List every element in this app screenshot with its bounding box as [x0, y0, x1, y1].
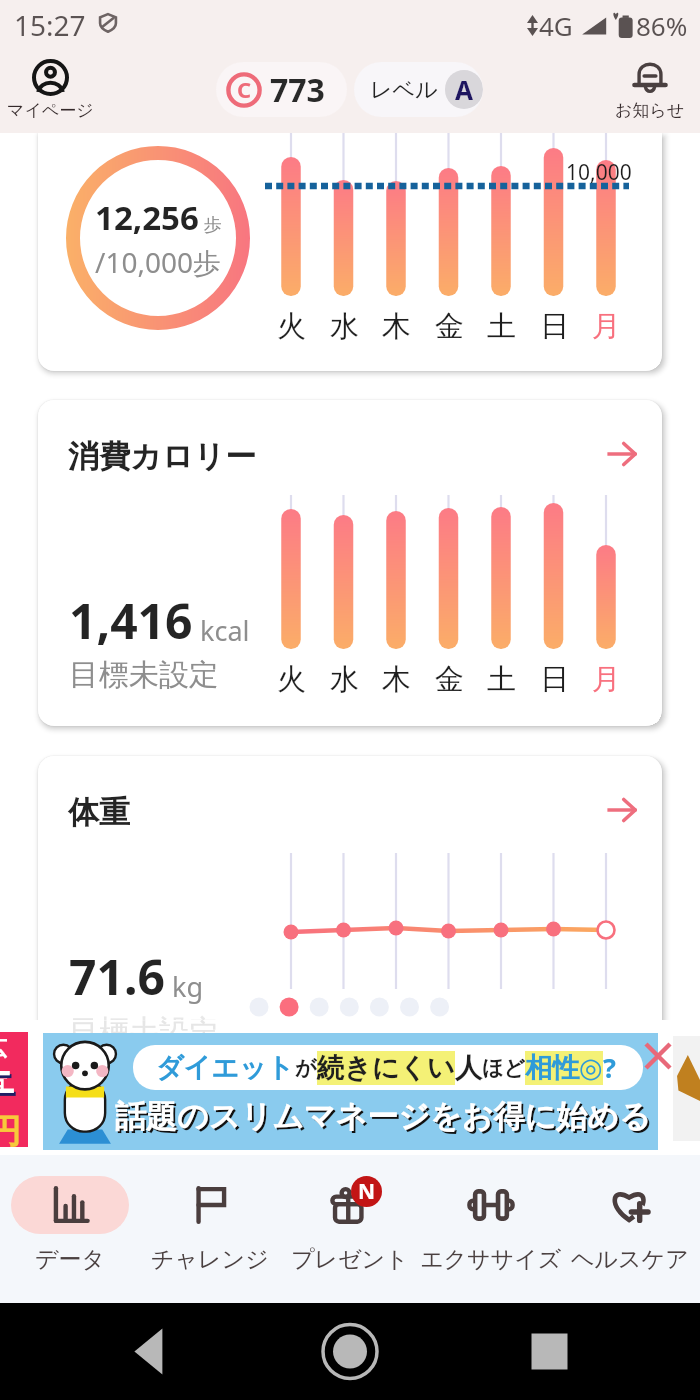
- staticText: ほど: [482, 1055, 525, 1081]
- staticText: 15:27: [14, 6, 86, 44]
- button[interactable]: エクササイズ: [411, 1163, 571, 1273]
- staticText: ニ: [0, 1060, 10, 1103]
- staticText: 773: [270, 68, 325, 112]
- staticText: ニ: [0, 1063, 12, 1106]
- staticText: 71.6: [69, 944, 165, 1009]
- staticText: kcal: [193, 612, 250, 649]
- staticText: 12,256: [95, 195, 199, 240]
- other: 詳細を見る: [604, 437, 638, 471]
- staticText: 1,416: [69, 588, 193, 653]
- staticText: 木: [382, 661, 411, 698]
- staticText: 金: [435, 308, 464, 345]
- staticText: 消費カロリー: [68, 437, 257, 476]
- button[interactable]: データ: [0, 1163, 150, 1273]
- staticText: 相性◎: [525, 1051, 603, 1085]
- staticText: お知らせ: [615, 100, 685, 121]
- staticText: 続きにくい: [317, 1051, 455, 1085]
- button[interactable]: N: [270, 1163, 430, 1273]
- staticText: 歩: [199, 212, 222, 237]
- staticText: ダイエット: [156, 1051, 295, 1085]
- staticText: データ: [35, 1245, 106, 1274]
- staticText: 86%: [636, 8, 688, 43]
- staticText: 日: [540, 308, 569, 345]
- button[interactable]: ダイエット: [43, 1033, 658, 1150]
- staticText: プレゼント: [291, 1245, 409, 1274]
- staticText: 月: [592, 308, 621, 345]
- staticText: ヘルスケア: [571, 1245, 689, 1274]
- button[interactable]: 12,256: [38, 133, 662, 371]
- button[interactable]: レベル: [354, 62, 483, 117]
- staticText: 水: [330, 308, 359, 345]
- staticText: 目標未設定: [69, 1016, 219, 1054]
- staticText: ?: [603, 1049, 616, 1086]
- staticText: 話題のスリムマネージをお得に始める: [115, 1097, 651, 1136]
- staticText: 土: [487, 308, 516, 345]
- staticText: 10,000: [566, 158, 632, 187]
- staticText: 月: [592, 661, 621, 698]
- staticText: 水: [330, 661, 359, 698]
- staticText: 目標未設定: [69, 1012, 219, 1050]
- staticText: 火: [277, 308, 306, 345]
- staticText: 広告: [0, 1035, 13, 1093]
- staticText: C: [237, 74, 252, 104]
- button[interactable]: 広告を閉じる: [644, 1042, 672, 1070]
- staticText: マイページ: [7, 100, 94, 121]
- staticText: /10,000歩: [95, 243, 222, 281]
- staticText: 体重: [68, 793, 130, 832]
- button[interactable]: チャレンジ: [130, 1163, 290, 1273]
- other: 詳細を見る: [604, 793, 638, 827]
- staticText: 金: [435, 661, 464, 698]
- staticText: kg: [165, 968, 204, 1005]
- button[interactable]: お知らせ: [606, 52, 694, 128]
- button[interactable]: ヘルスケア: [550, 1163, 700, 1273]
- staticText: が: [295, 1055, 317, 1081]
- staticText: レベル: [370, 76, 438, 104]
- staticText: 日: [540, 661, 569, 698]
- staticText: 円: [0, 1110, 15, 1147]
- button[interactable]: C: [216, 62, 347, 117]
- staticText: 4G: [539, 8, 573, 43]
- staticText: チャレンジ: [151, 1245, 269, 1274]
- staticText: A: [455, 72, 473, 107]
- button[interactable]: 消費カロリー: [38, 400, 662, 726]
- staticText: 火: [277, 661, 306, 698]
- button[interactable]: マイページ: [6, 52, 94, 128]
- staticText: エクササイズ: [420, 1245, 562, 1274]
- staticText: 目標未設定: [69, 656, 219, 694]
- staticText: 人: [455, 1051, 482, 1085]
- staticText: 話題のスリムマネージをお得に始める: [117, 1099, 653, 1138]
- button[interactable]: 体重: [38, 756, 662, 1082]
- staticText: 土: [487, 661, 516, 698]
- staticText: 木: [382, 308, 411, 345]
- staticText: N: [358, 1177, 376, 1206]
